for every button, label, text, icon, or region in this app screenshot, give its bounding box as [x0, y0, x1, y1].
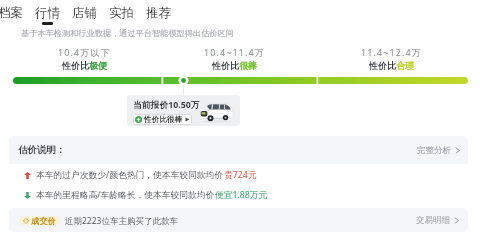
staticText: 估价说明： [18, 144, 66, 156]
staticText: 10.4~11.4万 [204, 46, 265, 58]
button[interactable]: 成交价 [9, 208, 468, 232]
button[interactable]: 店铺 [66, 5, 103, 21]
staticText: 推荐 [146, 5, 171, 21]
button[interactable]: 当前报价10.50万 [127, 95, 240, 126]
staticText: 近期2223位车主购买了此款车 [65, 215, 178, 227]
staticText: 实拍 [109, 5, 134, 21]
staticText: 店铺 [72, 5, 97, 21]
button[interactable]: 档案 [0, 5, 29, 21]
staticText: 极便 [89, 60, 107, 71]
staticText: 便宜1.88万元 [215, 189, 268, 201]
staticText: 成交价 [31, 216, 56, 225]
button[interactable]: 交易明细 [412, 211, 464, 230]
staticText: 11.4~12.4万 [361, 46, 422, 58]
staticText: 完整分析 [417, 145, 451, 156]
button[interactable]: 推荐 [140, 5, 177, 21]
staticText: 性价比 [369, 60, 396, 71]
staticText: 档案 [0, 5, 23, 21]
staticText: 基于本车检测和行业数据，通过平台智能模型得出估价区间 [21, 28, 234, 38]
staticText: 很棒 [239, 60, 257, 71]
staticText: 交易明细 [416, 215, 450, 226]
staticText: 当前报价10.50万 [133, 99, 200, 111]
staticText: 性价比 [62, 60, 89, 71]
button[interactable]: 完整分析 [410, 140, 468, 161]
button[interactable]: 行情 [29, 5, 66, 25]
staticText: 合理 [396, 60, 414, 71]
staticText: 本车的过户次数少/颜色热门，使本车较同款均价 [36, 169, 224, 181]
button[interactable]: 实拍 [103, 5, 140, 21]
staticText: 10.4万以下 [58, 46, 111, 58]
staticText: 贵724元 [224, 169, 257, 181]
staticText: 本车的里程略高/车龄略长，使本车较同款均价 [36, 189, 215, 201]
staticText: 行情 [35, 5, 60, 21]
staticText: 性价比很棒 [144, 115, 182, 125]
staticText: 性价比 [212, 60, 239, 71]
